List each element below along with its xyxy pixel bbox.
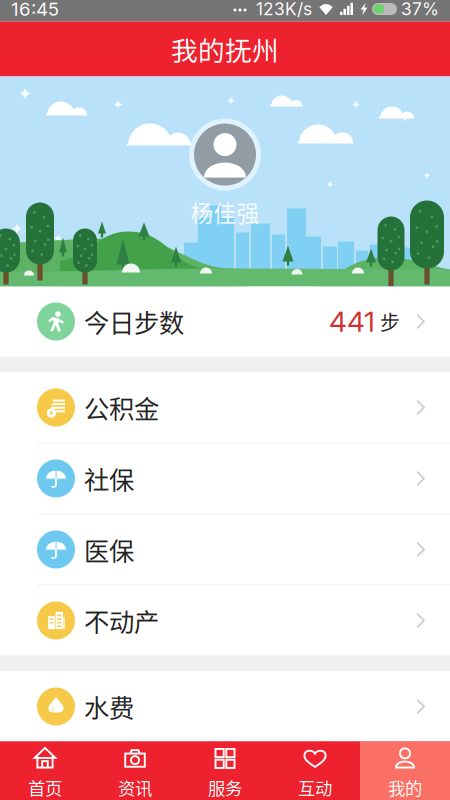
button[interactable]: 首页 (0, 741, 90, 800)
staticText: 互动 (298, 775, 332, 800)
staticText: 服务 (208, 775, 242, 800)
staticText: 今日步数 (84, 303, 184, 340)
staticText: 公积金 (84, 389, 159, 426)
staticText: 123K/s (256, 0, 312, 19)
staticText: 441 (329, 305, 375, 338)
staticText: 医保 (84, 531, 134, 568)
staticText: 37% (401, 0, 439, 19)
staticText: 水费 (84, 688, 134, 725)
button[interactable]: 社保 (0, 443, 450, 513)
staticText: 步 (380, 307, 400, 336)
staticText: 我的 (388, 775, 422, 800)
staticText: 社保 (84, 460, 134, 497)
staticText: 首页 (28, 775, 62, 800)
staticText: 不动产 (84, 602, 159, 639)
staticText: 我的抚州 (171, 30, 279, 68)
button[interactable]: 公积金 (0, 372, 450, 442)
staticText: 资讯 (118, 775, 152, 800)
button[interactable]: 服务 (180, 741, 270, 800)
button[interactable]: 医保 (0, 514, 450, 584)
button[interactable]: 互动 (270, 741, 360, 800)
button[interactable]: 资讯 (90, 741, 180, 800)
staticText: 杨佳强 (190, 196, 259, 228)
button[interactable]: 我的 (360, 741, 450, 800)
button[interactable]: 今日步数 (0, 286, 450, 356)
button[interactable]: 不动产 (0, 585, 450, 655)
button[interactable]: 水费 (0, 671, 450, 741)
staticText: 16:45 (11, 0, 59, 20)
